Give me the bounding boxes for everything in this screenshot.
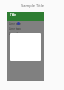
staticText: Line three [9, 32, 24, 36]
staticText: Line one [9, 22, 22, 26]
staticText: Sample Title [21, 3, 44, 8]
staticText: Title [10, 13, 16, 17]
staticText: Line two [9, 27, 21, 31]
